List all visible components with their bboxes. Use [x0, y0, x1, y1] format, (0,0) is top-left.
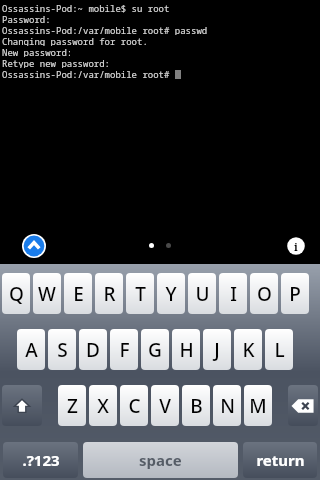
- staticText: L: [274, 337, 285, 363]
- staticText: Y: [165, 281, 177, 307]
- button[interactable]: U: [188, 273, 216, 314]
- button[interactable]: Scroll up: [22, 234, 46, 258]
- button[interactable]: O: [250, 273, 278, 314]
- button[interactable]: L: [265, 329, 293, 370]
- button[interactable]: N: [213, 385, 241, 426]
- staticText: T: [135, 281, 146, 307]
- staticText: J: [214, 337, 220, 363]
- staticText: Password:: [2, 13, 51, 24]
- button[interactable]: F: [110, 329, 138, 370]
- button[interactable]: Info: [286, 236, 306, 256]
- button[interactable]: D: [79, 329, 107, 370]
- staticText: space: [139, 450, 182, 470]
- staticText: V: [159, 393, 171, 419]
- button[interactable]: W: [33, 273, 61, 314]
- button[interactable]: V: [151, 385, 179, 426]
- staticText: Q: [9, 281, 24, 307]
- staticText: O: [257, 281, 272, 307]
- button[interactable]: space: [83, 442, 238, 478]
- staticText: return: [256, 450, 305, 470]
- button[interactable]: E: [64, 273, 92, 314]
- staticText: i: [294, 239, 298, 254]
- staticText: G: [148, 337, 162, 363]
- staticText: B: [190, 393, 203, 419]
- staticText: W: [38, 281, 56, 307]
- staticText: F: [119, 337, 130, 363]
- button[interactable]: Shift: [2, 385, 42, 426]
- button[interactable]: R: [95, 273, 123, 314]
- button[interactable]: K: [234, 329, 262, 370]
- staticText: Ossassins-Pod:~ mobile$ su root: [2, 2, 170, 13]
- staticText: C: [128, 393, 141, 419]
- staticText: X: [97, 393, 109, 419]
- staticText: E: [73, 281, 84, 307]
- staticText: U: [195, 281, 210, 307]
- staticText: N: [220, 393, 235, 419]
- button[interactable]: H: [172, 329, 200, 370]
- staticText: New password:: [2, 46, 73, 57]
- button[interactable]: P: [281, 273, 309, 314]
- staticText: D: [86, 337, 100, 363]
- staticText: R: [103, 281, 116, 307]
- button[interactable]: C: [120, 385, 148, 426]
- staticText: S: [57, 337, 68, 363]
- button[interactable]: return: [243, 442, 317, 478]
- staticText: Z: [67, 393, 78, 419]
- staticText: Ossassins-Pod:/var/mobile root#: [2, 68, 175, 79]
- button[interactable]: S: [48, 329, 76, 370]
- button[interactable]: I: [219, 273, 247, 314]
- button[interactable]: B: [182, 385, 210, 426]
- button[interactable]: Z: [58, 385, 86, 426]
- staticText: Changing password for root.: [2, 35, 148, 46]
- button[interactable]: Q: [2, 273, 30, 314]
- button[interactable]: T: [126, 273, 154, 314]
- staticText: A: [25, 337, 38, 363]
- button[interactable]: G: [141, 329, 169, 370]
- button[interactable]: J: [203, 329, 231, 370]
- button[interactable]: Backspace: [288, 385, 318, 426]
- button[interactable]: .?123: [3, 442, 78, 478]
- staticText: M: [249, 393, 267, 419]
- button[interactable]: Y: [157, 273, 185, 314]
- button[interactable]: M: [244, 385, 272, 426]
- staticText: K: [242, 337, 255, 363]
- button[interactable]: A: [17, 329, 45, 370]
- staticText: H: [179, 337, 194, 363]
- staticText: Ossassins-Pod:/var/mobile root# passwd: [2, 24, 208, 35]
- staticText: I: [230, 281, 237, 307]
- staticText: P: [289, 281, 301, 307]
- button[interactable]: X: [89, 385, 117, 426]
- staticText: Retype new password:: [2, 57, 111, 68]
- staticText: .?123: [22, 450, 60, 470]
